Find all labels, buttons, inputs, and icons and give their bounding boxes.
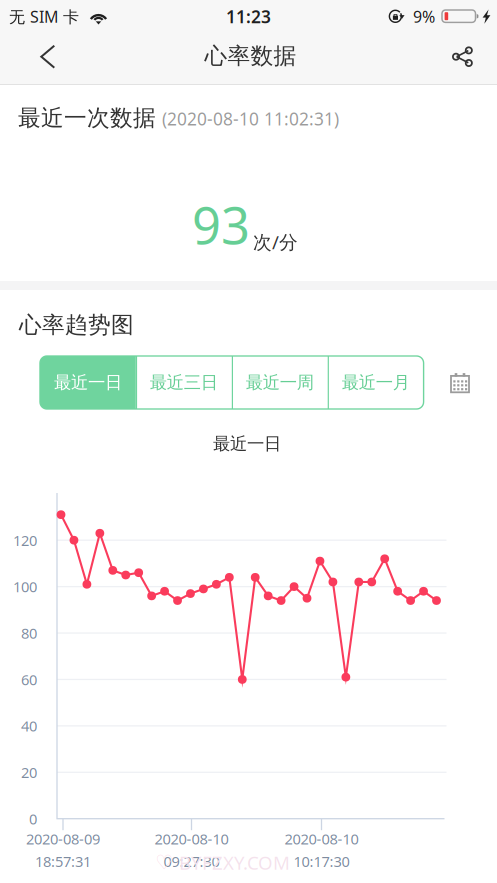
button[interactable]: Pick date <box>442 365 478 401</box>
staticText: 最近一月 <box>342 372 410 393</box>
staticText: 09:27:30 <box>163 851 219 871</box>
button[interactable]: 最近一月 <box>328 356 424 409</box>
staticText: 心率趋势图 <box>19 311 134 339</box>
staticText: 120 <box>13 530 37 550</box>
staticText: 无 SIM 卡 <box>9 6 79 27</box>
button[interactable]: Share <box>437 33 489 81</box>
staticText: 80 <box>21 623 37 643</box>
staticText: 最近一次数据 <box>18 104 156 132</box>
staticText: 10:17:30 <box>293 851 349 871</box>
button[interactable]: 最近一日 <box>40 356 136 409</box>
staticText: 0 <box>29 809 37 828</box>
staticText: 次/分 <box>253 229 298 254</box>
staticText: 93 <box>192 191 250 258</box>
staticText: 最近一周 <box>246 372 314 393</box>
staticText: ♡ <box>155 851 173 874</box>
staticText: 2020-08-09 <box>26 829 100 848</box>
staticText: 心率数据 <box>204 42 296 70</box>
staticText: 40 <box>21 716 37 736</box>
staticText: 9% <box>413 6 435 27</box>
staticText: 2020-08-10 <box>284 829 358 848</box>
staticText: 20 <box>21 762 37 782</box>
staticText: 60 <box>21 670 37 689</box>
staticText: 最近一日 <box>54 372 122 393</box>
staticText: 最近一日 <box>213 433 281 454</box>
button[interactable]: 最近三日 <box>136 356 232 409</box>
button[interactable]: 最近一周 <box>232 356 328 409</box>
staticText: 100 <box>13 577 37 596</box>
staticText: 18:57:31 <box>35 851 91 871</box>
staticText: (2020-08-10 11:02:31) <box>162 107 339 130</box>
staticText: 最近三日 <box>150 372 218 393</box>
staticText: BYFZXY.COM <box>179 850 290 875</box>
staticText: 11:23 <box>226 5 271 28</box>
button[interactable]: Back <box>22 33 74 81</box>
staticText: 2020-08-10 <box>154 829 228 848</box>
